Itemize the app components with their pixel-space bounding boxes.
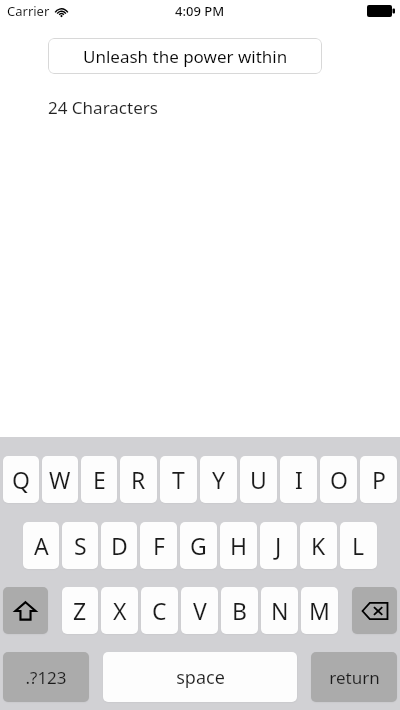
staticText: B xyxy=(232,595,247,626)
staticText: C xyxy=(152,595,167,626)
staticText: W xyxy=(49,464,71,495)
staticText: O xyxy=(330,464,348,495)
staticText: Y xyxy=(212,464,226,495)
staticText: Carrier xyxy=(7,2,50,20)
button[interactable]: T xyxy=(160,456,197,503)
button[interactable]: H xyxy=(220,522,257,569)
button[interactable]: Backspace xyxy=(352,587,397,634)
button[interactable]: R xyxy=(120,456,157,503)
staticText: .?123 xyxy=(25,666,67,689)
staticText: D xyxy=(111,530,128,561)
button[interactable]: X xyxy=(101,587,138,634)
button[interactable]: Z xyxy=(62,587,98,634)
button[interactable]: P xyxy=(360,456,397,503)
staticText: N xyxy=(271,595,289,626)
staticText: M xyxy=(309,595,330,626)
button[interactable]: Q xyxy=(3,456,39,503)
button[interactable]: Unleash the power within xyxy=(48,38,322,74)
button[interactable]: S xyxy=(62,522,98,569)
button[interactable]: K xyxy=(300,522,337,569)
staticText: V xyxy=(193,595,207,626)
button[interactable]: space xyxy=(103,652,297,702)
staticText: 24 Characters xyxy=(48,96,158,119)
staticText: K xyxy=(311,530,326,561)
button[interactable]: Shift xyxy=(3,587,48,634)
button[interactable]: Y xyxy=(200,456,237,503)
staticText: 4:09 PM xyxy=(175,2,225,20)
staticText: H xyxy=(230,530,248,561)
staticText: E xyxy=(93,464,106,495)
staticText: J xyxy=(275,530,282,561)
button[interactable]: M xyxy=(301,587,338,634)
button[interactable]: U xyxy=(240,456,277,503)
button[interactable]: F xyxy=(140,522,177,569)
staticText: Unleash the power within xyxy=(83,45,288,68)
button[interactable]: L xyxy=(340,522,377,569)
staticText: space xyxy=(176,665,225,690)
button[interactable]: O xyxy=(320,456,357,503)
button[interactable]: return xyxy=(311,652,397,702)
staticText: R xyxy=(131,464,146,495)
button[interactable]: I xyxy=(280,456,317,503)
button[interactable]: G xyxy=(180,522,217,569)
button[interactable]: J xyxy=(260,522,297,569)
staticText: return xyxy=(329,666,380,689)
staticText: A xyxy=(34,530,49,561)
staticText: Q xyxy=(12,464,30,495)
staticText: L xyxy=(352,530,365,561)
staticText: F xyxy=(153,530,165,561)
staticText: U xyxy=(250,464,267,495)
button[interactable]: E xyxy=(81,456,117,503)
button[interactable]: A xyxy=(23,522,59,569)
staticText: P xyxy=(372,464,386,495)
button[interactable]: V xyxy=(181,587,218,634)
button[interactable]: .?123 xyxy=(3,652,89,702)
staticText: G xyxy=(190,530,207,561)
button[interactable]: N xyxy=(261,587,298,634)
button[interactable]: W xyxy=(42,456,78,503)
button[interactable]: D xyxy=(101,522,137,569)
button[interactable]: C xyxy=(141,587,178,634)
button[interactable]: B xyxy=(221,587,258,634)
staticText: Z xyxy=(73,595,87,626)
staticText: T xyxy=(172,464,185,495)
staticText: I xyxy=(295,464,303,495)
staticText: X xyxy=(113,595,127,626)
staticText: S xyxy=(74,530,87,561)
